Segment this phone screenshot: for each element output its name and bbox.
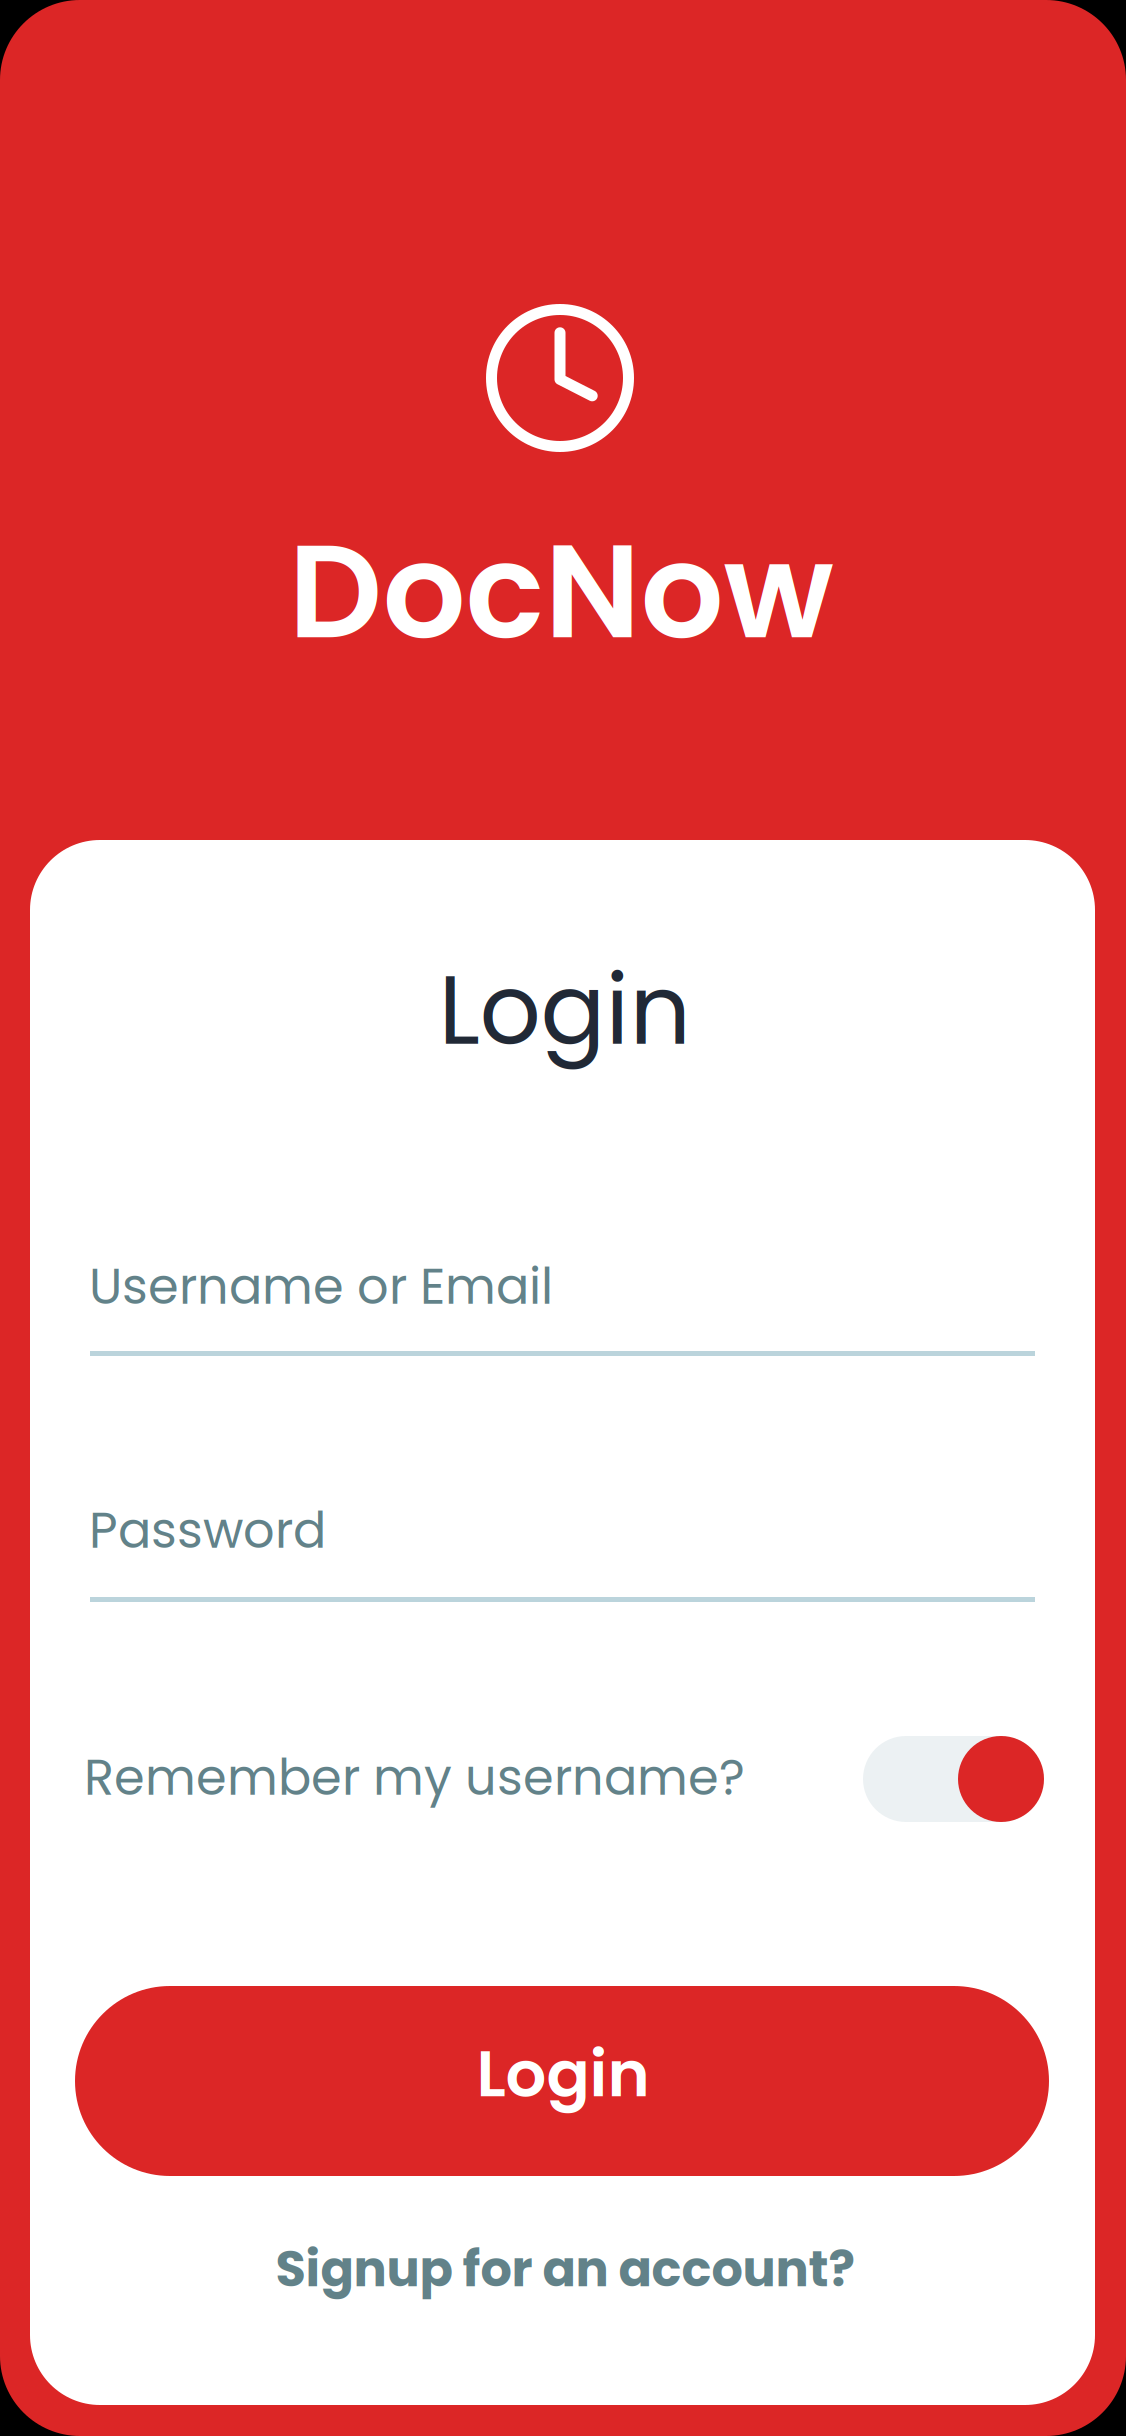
staticText: Signup for an account?	[275, 2234, 855, 2304]
staticText: DocNow	[288, 500, 833, 683]
staticText: Remember my username?	[84, 1743, 745, 1812]
button[interactable]: Username or Email	[90, 1252, 1035, 1356]
staticText: Login	[476, 2029, 649, 2119]
staticText: Username or Email	[89, 1252, 553, 1321]
staticText: Login	[438, 943, 690, 1077]
button[interactable]: Remember my username	[863, 1736, 1044, 1822]
button[interactable]: Signup for an account?	[30, 2235, 1095, 2303]
staticText: Password	[89, 1496, 326, 1565]
button[interactable]: Remember my username?	[84, 1736, 1014, 1822]
button[interactable]: Login	[75, 1986, 1049, 2176]
button[interactable]: Password	[90, 1496, 1035, 1602]
